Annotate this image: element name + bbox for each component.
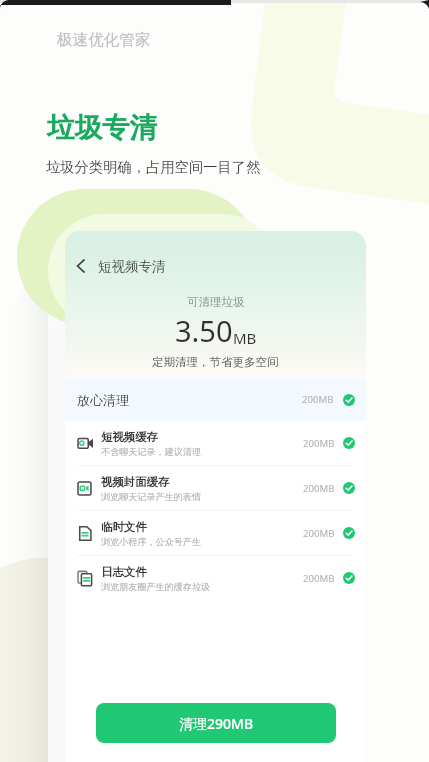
staticText: 浏览小程序，公众号产生 (101, 536, 202, 547)
button[interactable]: 放心清理 (65, 378, 366, 421)
staticText: 日志文件 (101, 565, 147, 579)
staticText: MB (233, 328, 257, 348)
staticText: 视频封面缓存 (101, 475, 170, 489)
staticText: 3.50 (175, 311, 233, 350)
staticText: 浏览朋友圈产生的缓存垃圾 (101, 581, 211, 592)
staticText: 极速优化管家 (57, 30, 151, 50)
staticText: 不含聊天记录，建议清理 (101, 446, 202, 457)
staticText: 垃圾专清 (47, 111, 157, 146)
button[interactable]: Back (65, 231, 366, 295)
staticText: 临时文件 (101, 520, 147, 534)
staticText: 垃圾分类明确，占用空间一目了然 (46, 158, 261, 176)
staticText: 放心清理 (77, 392, 129, 408)
other: Back (71, 256, 91, 276)
staticText: 定期清理，节省更多空间 (152, 355, 279, 369)
button[interactable]: 临时文件 (65, 511, 366, 555)
staticText: 200MB (303, 572, 335, 585)
button[interactable]: 日志文件 (65, 556, 366, 600)
staticText: 200MB (302, 393, 334, 406)
staticText: 短视频缓存 (101, 430, 158, 444)
button[interactable]: 清理290MB (96, 703, 336, 743)
staticText: 浏览聊天记录产生的表情 (101, 491, 202, 502)
staticText: 清理290MB (179, 714, 254, 733)
staticText: 可清理垃圾 (187, 295, 245, 309)
button[interactable]: 短视频缓存 (65, 421, 366, 465)
staticText: 200MB (303, 482, 335, 495)
button[interactable]: 视频封面缓存 (65, 466, 366, 510)
staticText: 短视频专清 (98, 258, 166, 275)
staticText: 200MB (303, 437, 335, 450)
staticText: 200MB (303, 527, 335, 540)
